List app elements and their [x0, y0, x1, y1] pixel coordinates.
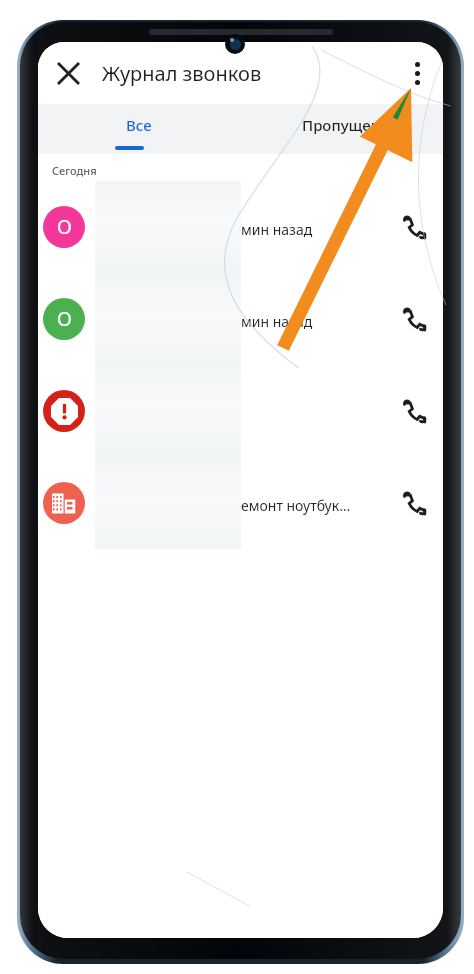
button[interactable]: Позвонить	[38, 365, 443, 457]
staticText: Пропущенны	[302, 115, 402, 135]
staticText: емонт ноутбук…	[241, 496, 351, 515]
button[interactable]: O	[38, 273, 443, 365]
staticText: Все	[126, 115, 152, 135]
staticText: мин назад	[241, 312, 313, 331]
staticText: мин назад	[241, 220, 313, 239]
button[interactable]: Позвонить	[392, 297, 436, 341]
button[interactable]: Ещё	[393, 49, 441, 97]
staticText: O	[57, 214, 72, 240]
button[interactable]: Пропущенны	[240, 104, 443, 154]
button[interactable]: Позвонить	[392, 481, 436, 525]
button[interactable]: Позвонить	[392, 205, 436, 249]
button[interactable]: Все	[38, 104, 240, 154]
staticText: O	[57, 306, 72, 332]
button[interactable]: Закрыть	[44, 49, 92, 97]
staticText: Сегодня	[52, 163, 97, 178]
button[interactable]: емонт ноутбук…	[38, 457, 443, 549]
staticText: Журнал звонков	[102, 60, 262, 87]
button[interactable]: Позвонить	[392, 389, 436, 433]
button[interactable]: O	[38, 181, 443, 273]
